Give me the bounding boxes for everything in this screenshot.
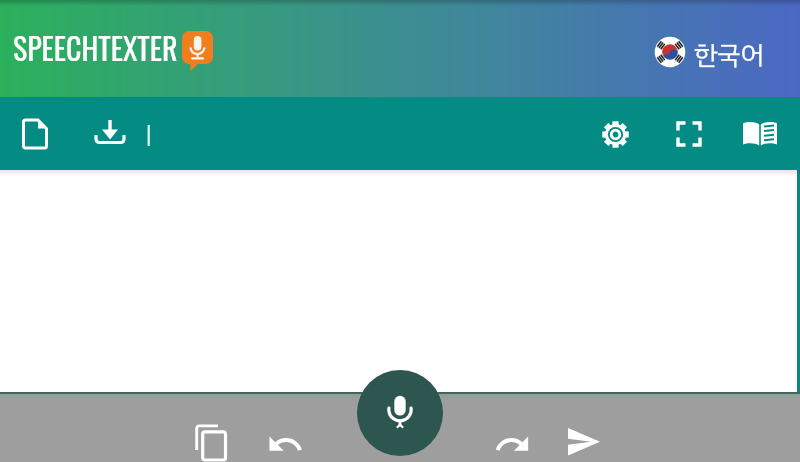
button[interactable] <box>559 417 607 462</box>
button[interactable] <box>736 110 784 158</box>
button[interactable] <box>186 417 234 462</box>
button[interactable] <box>665 110 713 158</box>
staticText: 한국어 <box>694 36 764 75</box>
button[interactable] <box>357 370 443 456</box>
staticText: SPEECHTEXTER <box>13 25 178 69</box>
button[interactable] <box>261 419 309 462</box>
button[interactable] <box>488 419 536 462</box>
button[interactable] <box>591 110 639 158</box>
button[interactable] <box>86 110 134 158</box>
button[interactable] <box>652 30 782 74</box>
button[interactable] <box>11 110 59 158</box>
